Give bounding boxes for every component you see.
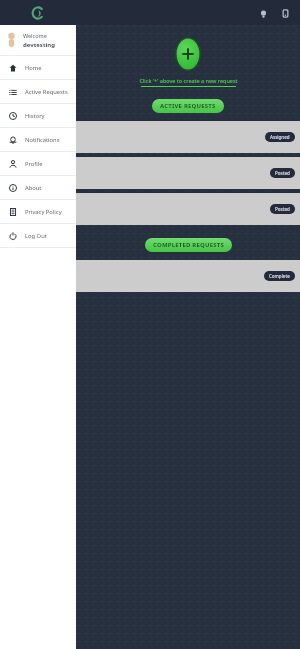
staticText: COMPLETED REQUESTS — [153, 241, 224, 249]
button[interactable]: Complete — [76, 260, 300, 292]
staticText: ACTIVE REQUESTS — [160, 102, 216, 110]
button[interactable]: Create a new request — [175, 37, 201, 71]
staticText: Profile — [25, 160, 43, 168]
staticText: About — [25, 184, 42, 192]
button[interactable]: Home — [0, 56, 76, 79]
staticText: Complete — [269, 273, 290, 279]
staticText: Welcome — [23, 32, 47, 39]
button[interactable]: Assigned — [76, 121, 300, 153]
button[interactable]: ACTIVE REQUESTS — [152, 99, 224, 113]
staticText: Privacy Policy — [25, 208, 62, 216]
staticText: devtesting — [23, 41, 55, 49]
button[interactable]: Log Out — [0, 224, 76, 247]
staticText: History — [25, 112, 45, 120]
staticText: Posted — [275, 206, 290, 212]
staticText: Log Out — [25, 232, 47, 240]
button[interactable]: Assigned — [265, 132, 295, 142]
button[interactable]: Notifications — [254, 4, 272, 22]
staticText: Posted — [275, 170, 290, 176]
staticText: Assigned — [270, 134, 290, 140]
staticText: Home — [25, 64, 42, 72]
staticText: Notifications — [25, 136, 60, 144]
button[interactable]: COMPLETED REQUESTS — [145, 238, 232, 252]
button[interactable]: Posted — [270, 168, 295, 178]
button[interactable]: History — [0, 104, 76, 127]
button[interactable]: About — [0, 176, 76, 199]
button[interactable]: Active Requests — [0, 80, 76, 103]
staticText: Active Requests — [25, 88, 68, 96]
button[interactable]: Posted — [270, 204, 295, 214]
button[interactable]: Posted — [76, 157, 300, 189]
button[interactable]: Account — [276, 4, 294, 22]
button[interactable]: Notifications — [0, 128, 76, 151]
button[interactable]: Welcome — [0, 25, 76, 55]
button[interactable]: Posted — [76, 193, 300, 225]
staticText: Click '+' above to create a new request — [139, 77, 238, 84]
button[interactable]: Complete — [264, 271, 295, 281]
button[interactable]: Profile — [0, 152, 76, 175]
button[interactable]: Privacy Policy — [0, 200, 76, 223]
